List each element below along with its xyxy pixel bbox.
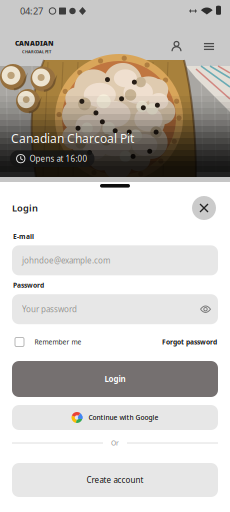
staticText: Forgot password — [162, 338, 217, 346]
staticText: Create account — [86, 475, 143, 485]
staticText: Login — [104, 374, 125, 384]
button[interactable]: Create account — [12, 463, 218, 497]
button[interactable]: Login — [12, 361, 218, 397]
staticText: Continue with Google — [88, 413, 158, 422]
staticText: E-mail — [13, 232, 34, 241]
staticText: Or — [111, 439, 119, 447]
button[interactable]: Continue with Google — [12, 405, 218, 430]
staticText: Remember me — [34, 338, 81, 346]
staticText: Canadian Charcoal Pit — [11, 130, 134, 146]
button[interactable]: Close — [192, 196, 216, 220]
staticText: CANADIAN — [15, 39, 54, 48]
button[interactable]: Forgot password — [151, 335, 217, 349]
staticText: johndoe@example.com — [22, 255, 110, 266]
staticText: Opens at 16:00 — [29, 153, 87, 164]
staticText: 04:27 — [20, 5, 43, 17]
button[interactable]: Show password — [193, 298, 218, 321]
button[interactable]: Menu — [196, 31, 222, 61]
button[interactable]: Remember me — [15, 335, 86, 349]
staticText: Password — [13, 281, 44, 290]
button[interactable]: Account — [163, 31, 190, 62]
staticText: Your password — [22, 304, 77, 314]
staticText: CHARCOAL PIT — [22, 49, 51, 54]
staticText: Login — [12, 202, 38, 214]
